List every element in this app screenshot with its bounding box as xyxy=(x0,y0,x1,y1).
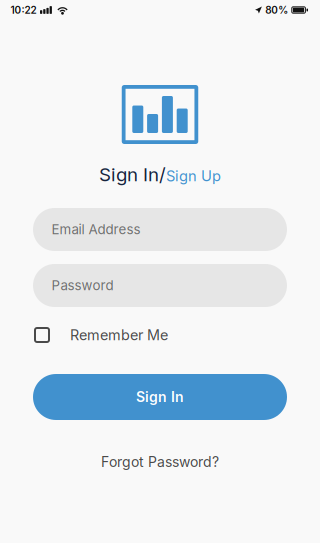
staticText: Remember Me xyxy=(70,326,168,344)
button[interactable]: Sign In xyxy=(33,374,287,420)
staticText: Forgot Password? xyxy=(101,453,219,470)
staticText: Email Address xyxy=(51,221,140,237)
staticText: Sign Up xyxy=(166,167,221,185)
staticText: Sign In/ xyxy=(99,163,166,186)
staticText: Sign In xyxy=(136,388,184,405)
button[interactable]: Remember Me xyxy=(0,319,320,351)
staticText: 80% xyxy=(265,4,288,16)
staticText: Password xyxy=(51,277,113,293)
button[interactable]: Sign Up xyxy=(166,167,221,185)
staticText: 10:22 xyxy=(10,4,36,16)
button[interactable]: Forgot Password? xyxy=(101,452,219,472)
